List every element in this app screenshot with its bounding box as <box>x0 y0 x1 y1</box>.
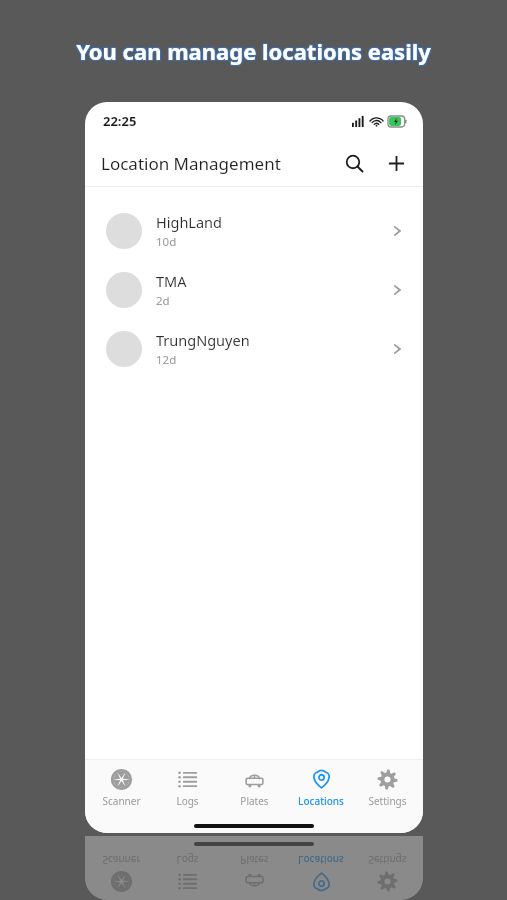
staticText: TrungNguyen <box>156 330 250 350</box>
staticText: Locations <box>298 794 344 808</box>
staticText: 12d <box>156 352 177 368</box>
staticText: TMA <box>156 271 187 291</box>
button[interactable]: TrungNguyen <box>85 319 423 378</box>
staticText: You can manage locations easily <box>61 35 448 65</box>
staticText: Location Management <box>101 152 333 175</box>
button[interactable]: Settings <box>356 767 418 810</box>
staticText: Locations <box>298 853 344 867</box>
staticText: Plates <box>240 853 269 867</box>
staticText: You can manage locations easily <box>61 37 448 67</box>
button[interactable]: Locations <box>290 767 352 810</box>
staticText: 2d <box>156 293 170 309</box>
staticText: Scanner <box>102 794 141 808</box>
staticText: You can manage locations easily <box>59 37 446 67</box>
button[interactable]: Scanner <box>90 767 152 810</box>
button[interactable]: Add location <box>375 142 417 184</box>
staticText: Logs <box>176 794 199 808</box>
button[interactable]: Logs <box>156 851 218 894</box>
staticText: Scanner <box>102 853 141 867</box>
button[interactable]: HighLand <box>85 201 423 260</box>
button[interactable]: Scanner <box>90 851 152 894</box>
staticText: 10d <box>156 234 177 250</box>
staticText: 22:25 <box>103 112 137 130</box>
button[interactable]: Logs <box>156 767 218 810</box>
staticText: Settings <box>368 853 407 867</box>
button[interactable]: Plates <box>223 767 285 810</box>
staticText: Plates <box>240 794 269 808</box>
staticText: Logs <box>176 853 199 867</box>
staticText: You can manage locations easily <box>60 36 447 66</box>
button[interactable]: Locations <box>290 851 352 894</box>
button[interactable]: Plates <box>223 851 285 894</box>
staticText: You can manage locations easily <box>59 35 446 65</box>
button[interactable]: Search <box>333 142 375 184</box>
button[interactable]: TMA <box>85 260 423 319</box>
button[interactable]: Settings <box>356 851 418 894</box>
staticText: HighLand <box>156 212 222 232</box>
staticText: Settings <box>368 794 407 808</box>
